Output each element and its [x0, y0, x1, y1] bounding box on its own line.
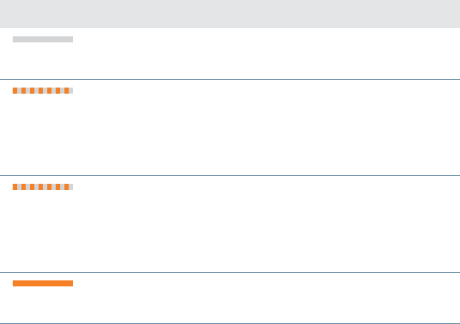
button[interactable]: List item, complete: [0, 273, 460, 323]
button[interactable]: List item, progress: [0, 176, 460, 272]
button[interactable]: List item, progress: [0, 80, 460, 175]
button[interactable]: Section heading: [0, 28, 460, 79]
